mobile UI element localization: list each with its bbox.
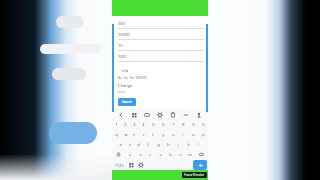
button[interactable]: s bbox=[125, 139, 134, 149]
button[interactable]: GIF bbox=[140, 109, 153, 120]
staticText: 10 bbox=[118, 43, 123, 48]
staticText: 6 bbox=[162, 122, 165, 127]
staticText: g bbox=[157, 142, 160, 147]
button[interactable]: Settings bbox=[153, 109, 166, 120]
button[interactable]: Emoji bbox=[126, 159, 136, 171]
staticText: f bbox=[147, 142, 149, 147]
staticText: v bbox=[159, 152, 162, 157]
button[interactable]: l bbox=[193, 139, 203, 149]
staticText: 3 bbox=[133, 122, 136, 127]
staticText: m bbox=[188, 152, 192, 157]
button[interactable]: i bbox=[178, 129, 188, 139]
staticText: o bbox=[192, 132, 195, 137]
button[interactable]: k bbox=[183, 139, 193, 149]
button[interactable]: d bbox=[134, 139, 143, 149]
button[interactable]: n bbox=[175, 149, 185, 159]
staticText: 10000 bbox=[118, 32, 130, 37]
staticText: k bbox=[187, 142, 190, 147]
button[interactable]: z bbox=[125, 149, 135, 159]
button[interactable]: 5 bbox=[148, 120, 158, 129]
staticText: s bbox=[129, 142, 131, 147]
button[interactable]: 1 bbox=[112, 120, 121, 129]
staticText: Search bbox=[122, 100, 132, 104]
button[interactable]: 9 bbox=[188, 120, 198, 129]
staticText: p bbox=[202, 132, 205, 137]
staticText: r bbox=[143, 132, 145, 137]
button[interactable]: h bbox=[163, 139, 173, 149]
staticText: . bbox=[186, 163, 188, 168]
staticText: u bbox=[172, 132, 175, 137]
staticText: q bbox=[115, 132, 118, 137]
button[interactable]: 8 bbox=[178, 120, 188, 129]
staticText: e bbox=[133, 132, 136, 137]
staticText: 1001 bbox=[118, 54, 128, 59]
button[interactable]: g bbox=[153, 139, 163, 149]
button[interactable]: 2 bbox=[121, 120, 130, 129]
staticText: i bbox=[182, 132, 184, 137]
button[interactable]: More bbox=[179, 109, 192, 120]
button[interactable]: 3 bbox=[130, 120, 139, 129]
staticText: x bbox=[139, 152, 142, 157]
button[interactable]: Next bbox=[193, 160, 207, 170]
staticText: value bbox=[118, 90, 126, 94]
staticText: PowerDirector bbox=[184, 173, 205, 177]
button[interactable]: b bbox=[165, 149, 175, 159]
button[interactable]: Clipboard bbox=[166, 109, 179, 120]
button[interactable]: 6 bbox=[158, 120, 168, 129]
button[interactable]: p bbox=[198, 129, 208, 139]
staticText: 4 bbox=[142, 122, 145, 127]
staticText: n/a bbox=[122, 68, 129, 73]
staticText: b bbox=[169, 152, 172, 157]
staticText: d bbox=[137, 142, 140, 147]
staticText: 9 bbox=[192, 122, 195, 127]
staticText: 100 bbox=[118, 21, 125, 26]
button[interactable]: Settings bbox=[136, 159, 146, 171]
staticText: Nu Uu Tau 0000:00 bbox=[118, 76, 147, 80]
staticText: Change bbox=[118, 83, 133, 88]
button[interactable]: v bbox=[155, 149, 165, 159]
staticText: 5 bbox=[152, 122, 155, 127]
button[interactable]: t bbox=[148, 129, 158, 139]
staticText: ?123 bbox=[115, 163, 124, 168]
button[interactable]: Voice input bbox=[192, 109, 205, 120]
staticText: a bbox=[119, 142, 122, 147]
staticText: z bbox=[129, 152, 131, 157]
button[interactable]: a bbox=[116, 139, 125, 149]
button[interactable]: c bbox=[145, 149, 155, 159]
button[interactable]: x bbox=[135, 149, 145, 159]
button[interactable]: Shift bbox=[112, 149, 125, 159]
staticText: w bbox=[124, 132, 128, 137]
staticText: h bbox=[167, 142, 170, 147]
button[interactable]: u bbox=[168, 129, 178, 139]
button[interactable]: w bbox=[121, 129, 130, 139]
button[interactable]: Period bbox=[182, 159, 192, 171]
staticText: 8 bbox=[182, 122, 185, 127]
button[interactable]: 0 bbox=[198, 120, 208, 129]
staticText: 7 bbox=[172, 122, 175, 127]
staticText: 0 bbox=[202, 122, 205, 127]
button[interactable]: j bbox=[173, 139, 183, 149]
button[interactable]: Back bbox=[115, 109, 127, 120]
staticText: t bbox=[152, 132, 154, 137]
button[interactable]: ?123 bbox=[112, 159, 126, 171]
staticText: 1 bbox=[115, 122, 118, 127]
staticText: n bbox=[179, 152, 182, 157]
button[interactable]: y bbox=[158, 129, 168, 139]
button[interactable]: o bbox=[188, 129, 198, 139]
staticText: y bbox=[162, 132, 165, 137]
button[interactable]: Backspace bbox=[195, 149, 208, 159]
button[interactable]: e bbox=[130, 129, 139, 139]
button[interactable]: Search bbox=[118, 98, 136, 106]
staticText: c bbox=[149, 152, 151, 157]
staticText: l bbox=[197, 142, 199, 147]
button[interactable]: 7 bbox=[168, 120, 178, 129]
button[interactable]: m bbox=[185, 149, 195, 159]
button[interactable]: r bbox=[139, 129, 148, 139]
button[interactable]: 4 bbox=[139, 120, 148, 129]
staticText: 2 bbox=[124, 122, 127, 127]
button[interactable]: q bbox=[112, 129, 121, 139]
button[interactable]: f bbox=[143, 139, 153, 149]
button[interactable]: Apps bbox=[127, 109, 140, 120]
button[interactable] bbox=[146, 159, 182, 171]
staticText: j bbox=[177, 142, 179, 147]
